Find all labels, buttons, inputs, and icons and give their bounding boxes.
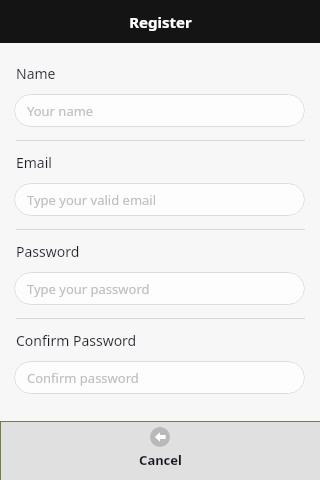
staticText: Confirm Password [16,331,137,350]
staticText: Cancel [139,451,182,469]
button[interactable]: Confirm password [14,361,305,394]
staticText: Type your password [27,280,150,298]
staticText: Confirm password [27,369,139,387]
button[interactable]: Your name [14,94,305,127]
staticText: Type your valid email [27,191,157,209]
staticText: Password [16,242,80,261]
staticText: Register [129,12,192,32]
staticText: Your name [27,102,94,120]
button[interactable]: Type your password [14,272,305,305]
staticText: Email [16,153,52,172]
staticText: Name [16,64,56,83]
button[interactable]: Type your valid email [14,183,305,216]
button[interactable]: Cancel [0,422,320,480]
